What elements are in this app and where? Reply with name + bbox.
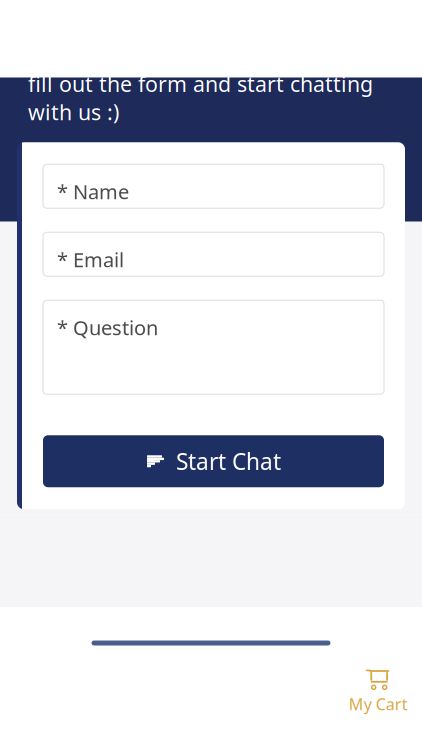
staticText: Start Chat — [176, 446, 281, 476]
staticText: fill out the form and start chatting wit… — [28, 70, 373, 126]
button[interactable]: Back — [0, 25, 52, 77]
staticText: * Email — [57, 246, 124, 273]
button[interactable]: More options — [382, 25, 422, 77]
button[interactable]: Next page — [348, 25, 382, 77]
button[interactable]: Start Chat — [43, 435, 384, 487]
button[interactable]: Previous page — [314, 25, 348, 77]
staticText: * Question — [57, 314, 158, 341]
button[interactable]: My Cart — [336, 658, 420, 723]
staticText: My Cart — [349, 693, 408, 715]
staticText: * Name — [57, 178, 129, 205]
